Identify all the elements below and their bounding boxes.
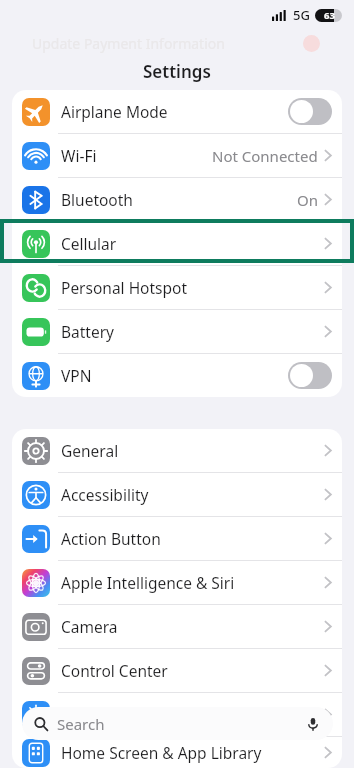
staticText: Accessibility — [61, 484, 149, 505]
button[interactable]: Wi-Fi — [12, 134, 342, 177]
button[interactable]: Toggle — [288, 98, 332, 125]
staticText: 5G — [293, 6, 310, 24]
staticText: Action Button — [61, 528, 161, 549]
staticText: Display & Brightness — [61, 704, 212, 725]
staticText: Control Center — [61, 660, 168, 681]
staticText: Bluetooth — [61, 189, 133, 210]
staticText: Home Screen & App Library — [61, 742, 262, 763]
staticText: Update Payment Information — [32, 34, 225, 53]
button[interactable]: VPN — [12, 354, 342, 397]
staticText: Battery — [61, 321, 115, 342]
staticText: Airplane Mode — [61, 101, 168, 122]
staticText: Wi-Fi — [61, 145, 97, 166]
button[interactable]: Search — [22, 707, 333, 740]
staticText: General — [61, 440, 119, 461]
button[interactable]: Cellular — [12, 222, 342, 265]
staticText: Settings — [143, 60, 211, 83]
button[interactable]: Display & Brightness — [12, 693, 342, 736]
button[interactable]: Accessibility — [12, 473, 342, 516]
button[interactable]: Apple Intelligence & Siri — [12, 561, 342, 604]
button[interactable]: Voice search — [305, 716, 321, 732]
button[interactable]: Home Screen & App Library — [12, 737, 342, 768]
button[interactable]: Action Button — [12, 517, 342, 560]
staticText: Camera — [61, 616, 118, 637]
staticText: Not Connected — [212, 146, 318, 166]
staticText: Search — [57, 714, 105, 734]
button[interactable]: Bluetooth — [12, 178, 342, 221]
button[interactable]: Camera — [12, 605, 342, 648]
staticText: VPN — [61, 365, 92, 386]
staticText: Apple Intelligence & Siri — [61, 572, 235, 593]
staticText: Personal Hotspot — [61, 277, 188, 298]
staticText: Cellular — [61, 233, 117, 254]
staticText: 63 — [324, 9, 335, 22]
button[interactable]: General — [12, 429, 342, 472]
staticText: On — [297, 190, 318, 210]
button[interactable]: Control Center — [12, 649, 342, 692]
button[interactable]: Toggle — [288, 362, 332, 389]
button[interactable]: Airplane Mode — [12, 90, 342, 133]
button[interactable]: Personal Hotspot — [12, 266, 342, 309]
button[interactable]: Battery — [12, 310, 342, 353]
